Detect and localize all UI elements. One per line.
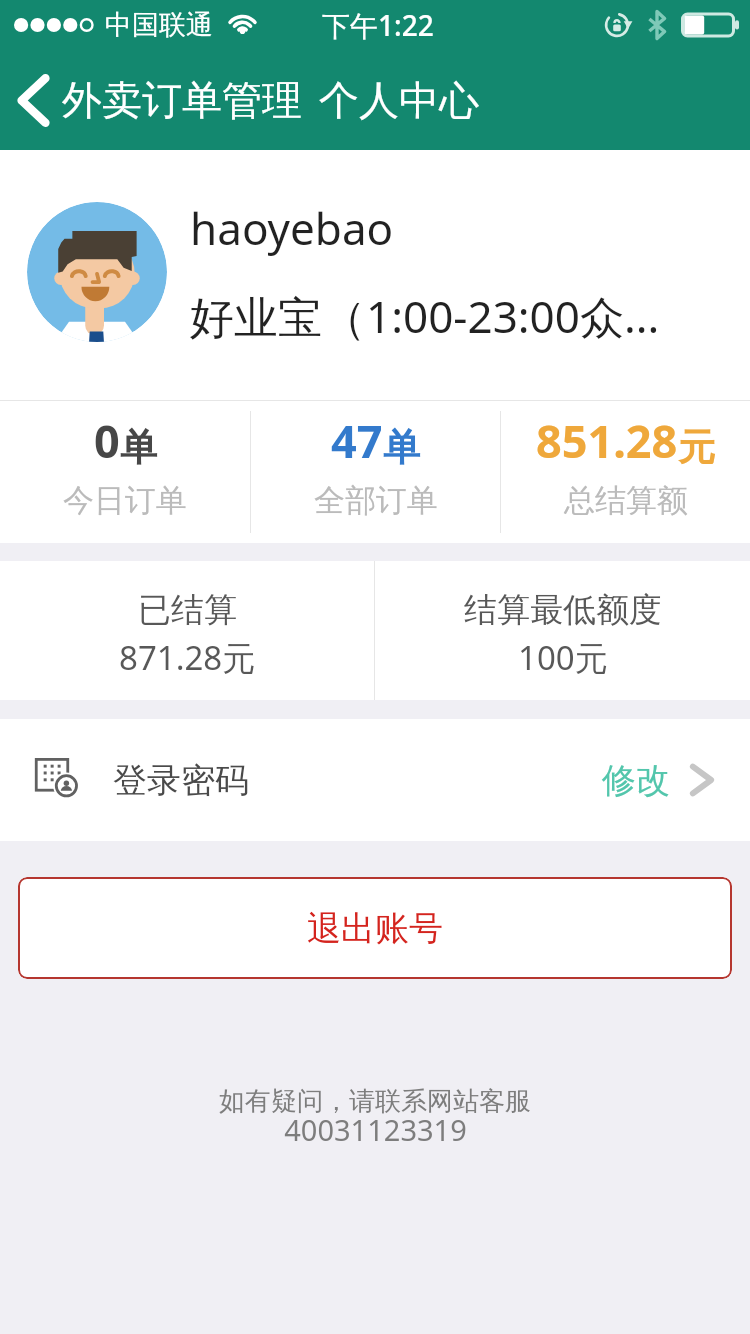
- staticText: 0: [94, 410, 120, 471]
- staticText: 100元: [518, 635, 608, 680]
- staticText: 已结算: [138, 589, 237, 631]
- button[interactable]: 47: [251, 417, 500, 527]
- staticText: haoyebao: [190, 198, 394, 258]
- staticText: 退出账号: [307, 907, 443, 950]
- staticText: 今日订单: [63, 481, 187, 520]
- staticText: 40031123319: [284, 1110, 467, 1149]
- button[interactable]: 登录密码: [0, 719, 750, 841]
- staticText: 中国联通: [105, 8, 213, 42]
- staticText: 个人中心: [319, 75, 479, 125]
- button[interactable]: 851.28: [501, 417, 750, 527]
- staticText: 单: [383, 424, 420, 471]
- staticText: 全部订单: [314, 481, 438, 520]
- staticText: 外卖订单管理: [62, 75, 302, 125]
- button[interactable]: 退出账号: [18, 877, 732, 979]
- button[interactable]: 返回: [0, 50, 62, 150]
- staticText: 851.28: [536, 410, 678, 471]
- staticText: 如有疑问，请联系网站客服: [219, 1085, 531, 1118]
- staticText: 下午1:22: [322, 6, 434, 44]
- staticText: 登录密码: [113, 759, 249, 802]
- staticText: 871.28元: [119, 635, 256, 680]
- staticText: 好业宝（1:00-23:00众...: [190, 286, 660, 346]
- staticText: 总结算额: [564, 481, 688, 520]
- staticText: 单: [120, 424, 157, 471]
- button[interactable]: 0: [0, 417, 250, 527]
- staticText: 修改: [602, 759, 670, 802]
- button[interactable]: 结算最低额度: [375, 585, 750, 676]
- staticText: 结算最低额度: [464, 589, 662, 631]
- staticText: 元: [678, 424, 715, 471]
- staticText: 47: [331, 410, 383, 471]
- button[interactable]: 已结算: [0, 585, 374, 676]
